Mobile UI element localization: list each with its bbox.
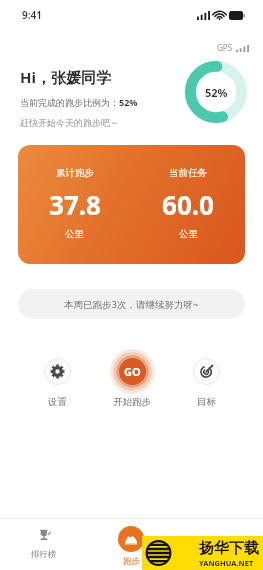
staticText: 9:41 xyxy=(22,8,42,22)
other: 目标 xyxy=(193,358,220,385)
staticText: 52% xyxy=(119,96,138,108)
staticText: 当前任务 xyxy=(169,167,207,179)
staticText: 扬华下载 xyxy=(199,539,259,558)
staticText: 累计跑步 xyxy=(56,167,94,179)
staticText: 当前完成的跑步比例为： xyxy=(20,97,119,108)
staticText: YANGHUA.NET xyxy=(199,558,254,568)
button[interactable]: 排行榜 xyxy=(0,526,87,560)
button[interactable]: 累计跑步 xyxy=(18,145,245,264)
staticText: 37.8 xyxy=(49,187,101,222)
staticText: 跑步 xyxy=(123,556,140,567)
staticText: GPS xyxy=(217,42,233,53)
other: 排行榜 xyxy=(35,526,52,543)
other: 设置 xyxy=(44,358,71,385)
staticText: 52% xyxy=(205,85,228,100)
other: 跑步 xyxy=(118,526,144,552)
button[interactable]: 设置 xyxy=(20,349,95,408)
staticText: GO xyxy=(124,364,141,379)
staticText: 排行榜 xyxy=(31,549,57,560)
staticText: 开始跑步 xyxy=(113,396,151,408)
staticText: 赶快开始今天的跑步吧～ xyxy=(20,117,119,128)
staticText: 本周已跑步3次，请继续努力呀~ xyxy=(64,298,199,311)
staticText: 60.0 xyxy=(162,187,214,222)
button[interactable]: 跑步 xyxy=(87,526,175,567)
staticText: Hi，张媛同学 xyxy=(20,67,111,87)
staticText: 目标 xyxy=(197,396,216,408)
staticText: 公里 xyxy=(65,228,84,240)
staticText: 设置 xyxy=(48,396,67,408)
button[interactable]: 本周已跑步3次，请继续努力呀~ xyxy=(18,289,245,319)
button[interactable]: 目标 xyxy=(169,349,243,408)
button[interactable]: GO xyxy=(95,349,169,408)
staticText: 公里 xyxy=(179,228,198,240)
